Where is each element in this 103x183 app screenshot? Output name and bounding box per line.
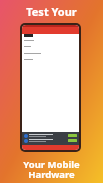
button[interactable]: Download: [68, 139, 77, 142]
staticText: Your Mobile Hardware: [0, 158, 103, 181]
button[interactable]: Download: [22, 133, 79, 138]
button[interactable]: Download: [22, 138, 79, 143]
button[interactable]: Download: [68, 134, 77, 137]
staticText: Test Your: [26, 4, 77, 19]
